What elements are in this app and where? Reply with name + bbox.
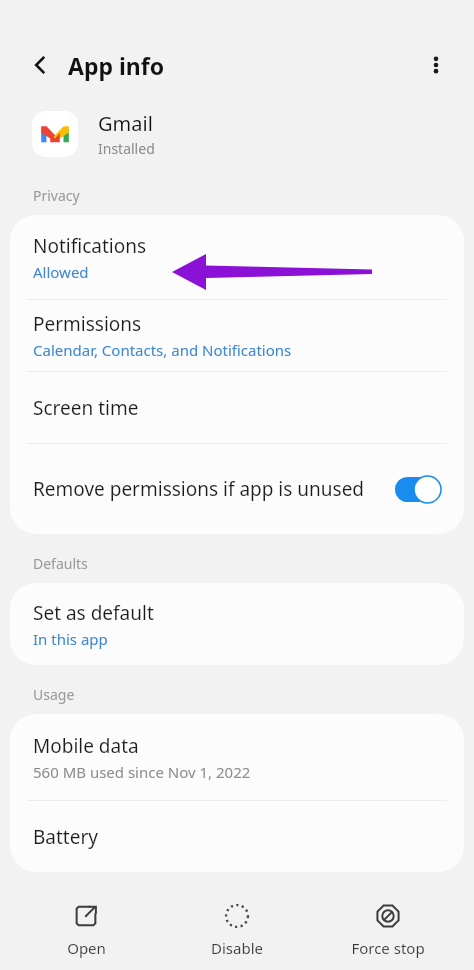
staticText: Privacy: [33, 186, 80, 205]
staticText: Force stop: [351, 938, 425, 958]
staticText: Screen time: [33, 395, 139, 421]
staticText: Remove permissions if app is unused: [33, 476, 369, 502]
other: Disable: [224, 903, 250, 929]
staticText: App info: [68, 50, 165, 81]
button[interactable]: Back: [20, 45, 60, 85]
staticText: In this app: [33, 629, 108, 649]
staticText: Calendar, Contacts, and Notifications: [33, 340, 292, 360]
button[interactable]: More options: [416, 45, 456, 85]
other: Force stop: [375, 903, 401, 929]
button[interactable]: Force stop: [323, 890, 453, 970]
staticText: Battery: [33, 824, 98, 850]
staticText: Open: [67, 938, 106, 958]
button[interactable]: Permissions: [10, 300, 464, 371]
staticText: Allowed: [33, 262, 89, 282]
button[interactable]: Battery: [10, 801, 464, 872]
staticText: Set as default: [33, 600, 154, 626]
staticText: Installed: [98, 139, 155, 158]
other: Open: [73, 903, 99, 929]
button[interactable]: Set as default: [10, 583, 464, 665]
staticText: Usage: [33, 685, 75, 704]
staticText: Permissions: [33, 311, 142, 337]
staticText: Notifications: [33, 233, 147, 259]
button[interactable]: Mobile data: [10, 714, 464, 800]
staticText: 560 MB used since Nov 1, 2022: [33, 762, 251, 782]
staticText: Mobile data: [33, 733, 139, 759]
staticText: Disable: [211, 938, 263, 958]
staticText: Defaults: [33, 554, 88, 573]
button[interactable]: Screen time: [10, 372, 464, 443]
staticText: Gmail: [98, 110, 153, 137]
button[interactable]: Remove permissions if app is unused: [10, 444, 464, 534]
button[interactable]: Notifications: [10, 215, 464, 299]
button[interactable]: Remove permissions toggle: [395, 476, 441, 503]
button[interactable]: Open: [21, 890, 151, 970]
button[interactable]: Disable: [172, 890, 302, 970]
